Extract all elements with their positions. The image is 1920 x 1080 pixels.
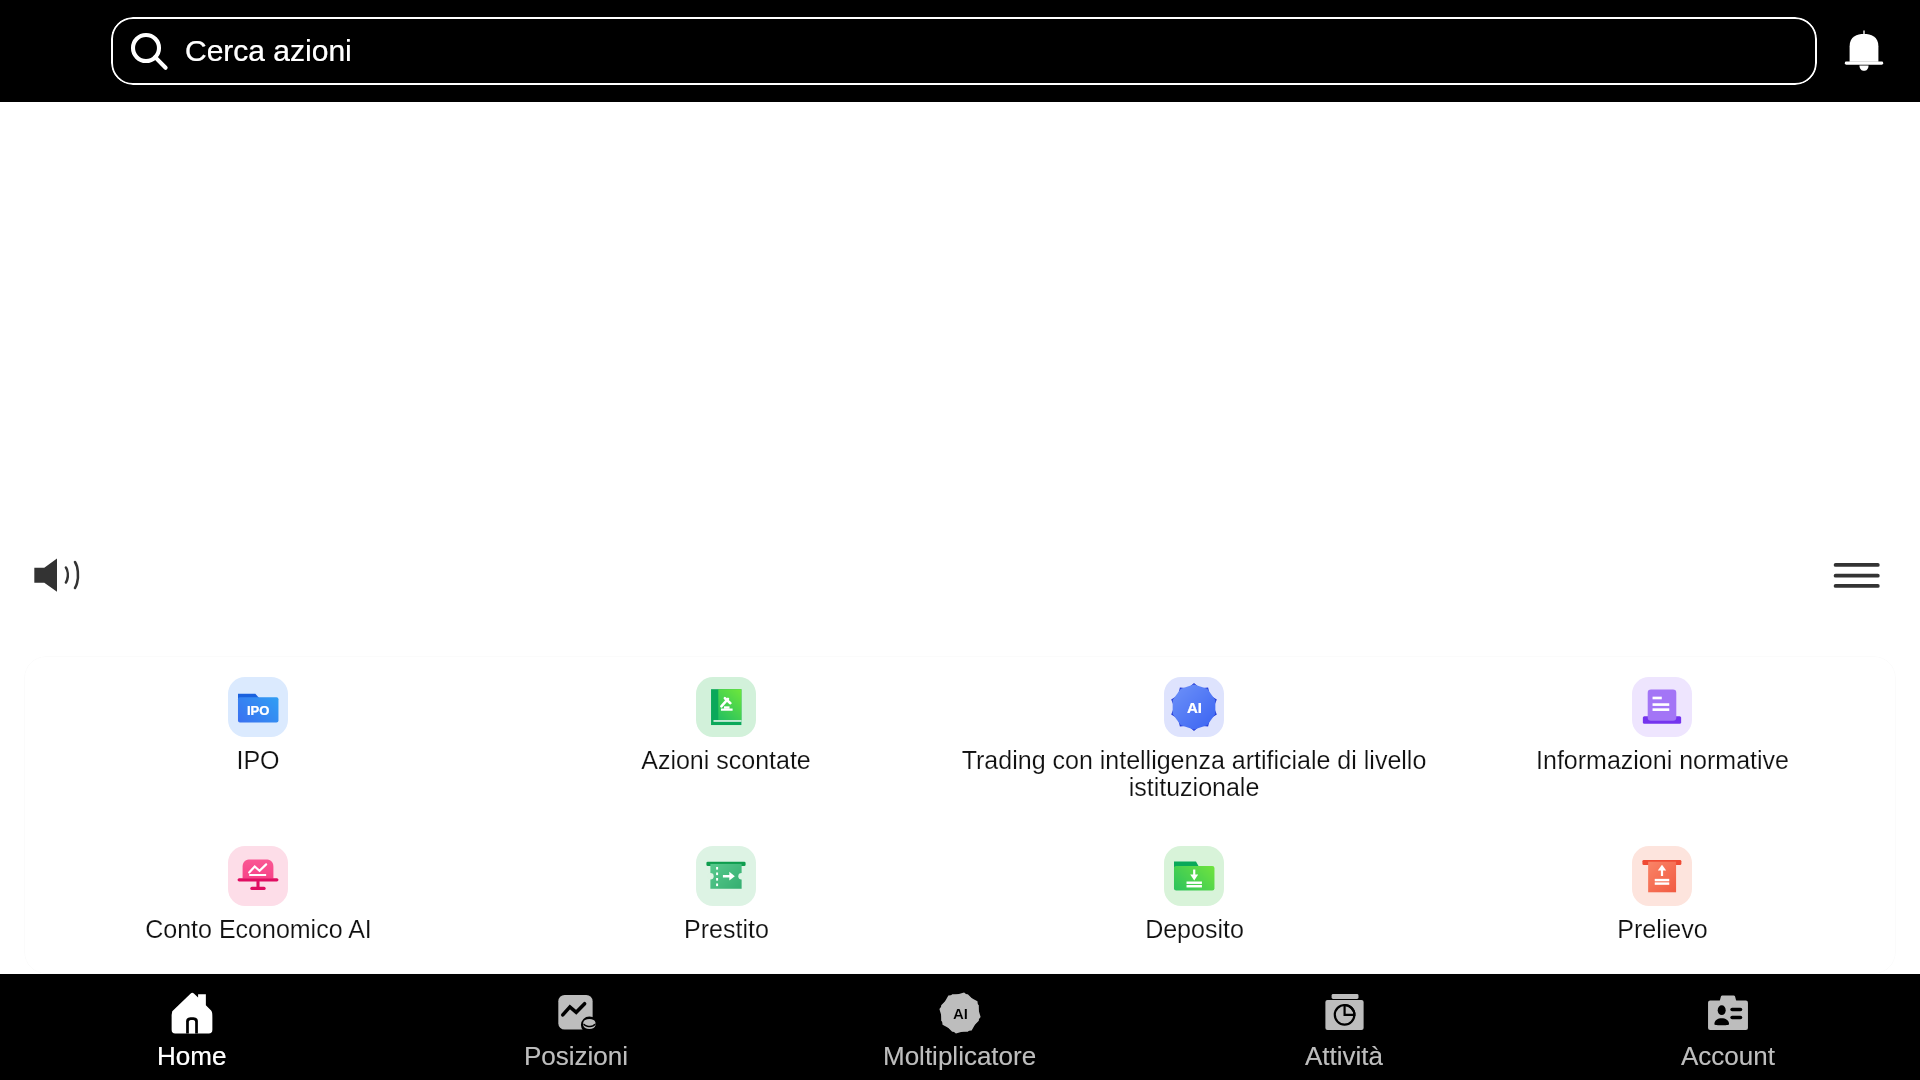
button[interactable]: Attività [1152, 974, 1536, 1080]
staticText: Prestito [684, 915, 769, 943]
button[interactable]: Announcements [22, 540, 92, 610]
button[interactable]: Notifications [1817, 0, 1920, 102]
button[interactable]: Informazioni normative [1428, 677, 1896, 774]
staticText: Attività [1305, 1041, 1384, 1070]
staticText: Azioni scontate [641, 746, 811, 774]
staticText: IPO [247, 703, 270, 718]
staticText: Posizioni [524, 1041, 629, 1070]
button[interactable]: Deposito [960, 846, 1428, 943]
button[interactable]: Account [1536, 974, 1920, 1080]
button[interactable]: Conto Economico AI [24, 846, 492, 943]
button[interactable]: Azioni scontate [492, 677, 960, 774]
staticText: Conto Economico AI [145, 915, 372, 943]
staticText: AI [953, 1005, 968, 1022]
staticText: Moltiplicatore [883, 1041, 1037, 1070]
button[interactable]: AI [768, 974, 1152, 1080]
staticText: Home [157, 1041, 227, 1070]
button[interactable]: Posizioni [384, 974, 768, 1080]
button[interactable]: Cerca azioni [111, 17, 1817, 85]
button[interactable]: IPO [24, 677, 492, 774]
staticText: Cerca azioni [185, 34, 352, 68]
staticText: IPO [236, 746, 280, 774]
staticText: Trading con intelligenza artificiale di … [960, 746, 1428, 802]
staticText: Informazioni normative [1536, 746, 1789, 774]
button[interactable]: Prestito [492, 846, 960, 943]
staticText: Deposito [1145, 915, 1244, 943]
staticText: Prelievo [1617, 915, 1708, 943]
staticText: Account [1681, 1041, 1775, 1070]
button[interactable]: Home [0, 974, 384, 1080]
button[interactable]: Menu [1828, 540, 1898, 610]
staticText: AI [1187, 699, 1202, 716]
button[interactable]: Prelievo [1428, 846, 1896, 943]
button[interactable]: AI [960, 677, 1428, 802]
